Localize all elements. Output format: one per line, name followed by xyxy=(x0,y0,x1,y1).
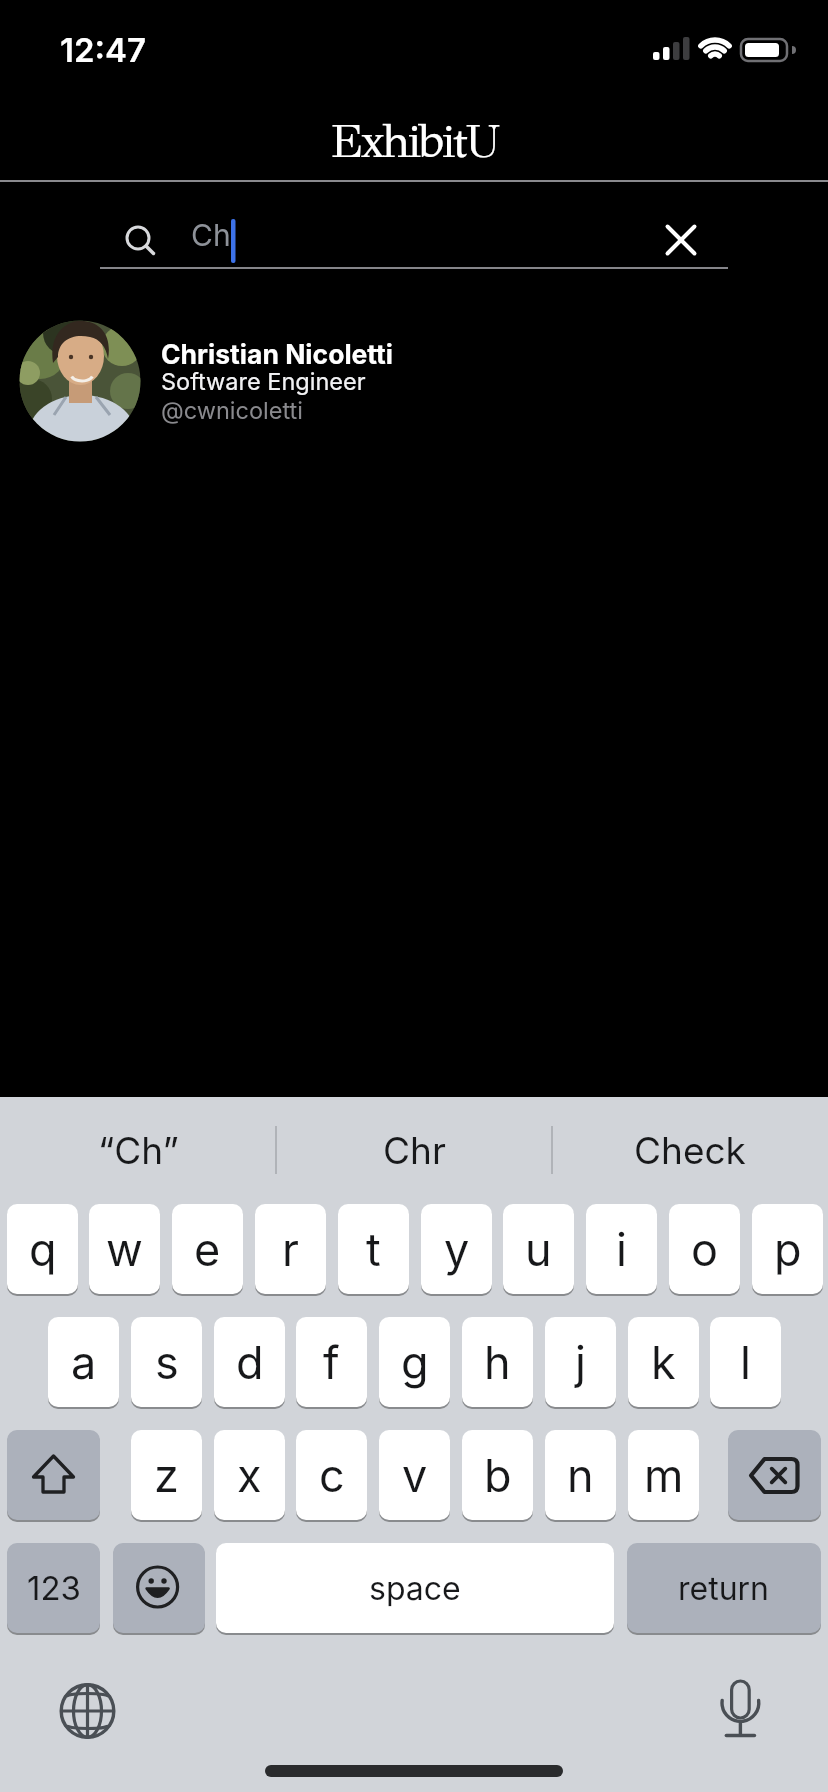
staticText: u xyxy=(525,1222,552,1276)
staticText: space xyxy=(369,1569,461,1608)
button[interactable] xyxy=(53,1677,121,1745)
staticText: ExhibitU xyxy=(0,112,828,170)
staticText: z xyxy=(154,1448,179,1502)
staticText: Chr xyxy=(383,1128,446,1173)
staticText: j xyxy=(575,1335,586,1389)
staticText: n xyxy=(567,1448,594,1502)
staticText: Software Engineer xyxy=(161,367,366,395)
staticText: y xyxy=(444,1222,470,1276)
staticText: @cwnicoletti xyxy=(161,396,303,424)
staticText: 12:47 xyxy=(60,30,147,70)
button[interactable]: x xyxy=(214,1430,285,1520)
button[interactable]: c xyxy=(296,1430,367,1520)
staticText: e xyxy=(194,1222,221,1276)
button[interactable]: Chr xyxy=(276,1097,552,1204)
staticText: return xyxy=(678,1569,770,1608)
button[interactable] xyxy=(706,1675,774,1743)
button[interactable] xyxy=(113,1543,205,1633)
staticText: m xyxy=(644,1448,684,1502)
staticText: Christian Nicoletti xyxy=(161,338,394,370)
button[interactable]: p xyxy=(752,1204,823,1294)
button[interactable] xyxy=(728,1430,821,1520)
button[interactable]: g xyxy=(379,1317,450,1407)
button[interactable]: o xyxy=(669,1204,740,1294)
button[interactable] xyxy=(7,1430,100,1520)
button[interactable]: v xyxy=(379,1430,450,1520)
button[interactable]: Christian Nicoletti xyxy=(0,312,828,452)
staticText: o xyxy=(691,1222,718,1276)
button[interactable]: m xyxy=(628,1430,699,1520)
button[interactable]: “Ch” xyxy=(0,1097,276,1204)
staticText: g xyxy=(401,1335,429,1389)
staticText: w xyxy=(106,1222,143,1276)
button[interactable]: a xyxy=(48,1317,119,1407)
button[interactable]: u xyxy=(503,1204,574,1294)
button[interactable]: Ch xyxy=(100,205,728,271)
button[interactable]: k xyxy=(628,1317,699,1407)
staticText: b xyxy=(484,1448,512,1502)
staticText: r xyxy=(282,1222,299,1276)
button[interactable]: e xyxy=(172,1204,243,1294)
staticText: d xyxy=(236,1335,264,1389)
button[interactable]: l xyxy=(710,1317,781,1407)
staticText: s xyxy=(155,1335,179,1389)
staticText: t xyxy=(366,1222,381,1276)
staticText: i xyxy=(616,1222,627,1276)
button[interactable]: j xyxy=(545,1317,616,1407)
staticText: Ch xyxy=(191,217,231,253)
staticText: q xyxy=(29,1222,57,1276)
button[interactable]: s xyxy=(131,1317,202,1407)
button[interactable]: 123 xyxy=(7,1543,100,1633)
staticText: “Ch” xyxy=(98,1128,179,1173)
button[interactable]: t xyxy=(338,1204,409,1294)
button[interactable] xyxy=(660,217,708,265)
staticText: c xyxy=(319,1448,345,1502)
staticText: k xyxy=(651,1335,676,1389)
button[interactable]: Check xyxy=(552,1097,828,1204)
button[interactable]: w xyxy=(89,1204,160,1294)
button[interactable]: h xyxy=(462,1317,533,1407)
button[interactable]: d xyxy=(214,1317,285,1407)
button[interactable]: space xyxy=(216,1543,614,1633)
staticText: l xyxy=(740,1335,751,1389)
button[interactable]: q xyxy=(7,1204,78,1294)
button[interactable]: y xyxy=(421,1204,492,1294)
staticText: a xyxy=(71,1335,97,1389)
button[interactable]: i xyxy=(586,1204,657,1294)
staticText: p xyxy=(774,1222,802,1276)
button[interactable]: b xyxy=(462,1430,533,1520)
button[interactable]: n xyxy=(545,1430,616,1520)
staticText: h xyxy=(484,1335,511,1389)
button[interactable]: r xyxy=(255,1204,326,1294)
button[interactable]: return xyxy=(627,1543,821,1633)
staticText: x xyxy=(237,1448,262,1502)
staticText: 123 xyxy=(27,1568,81,1608)
staticText: Check xyxy=(634,1128,746,1173)
button[interactable]: z xyxy=(131,1430,202,1520)
staticText: f xyxy=(323,1335,340,1389)
button[interactable]: f xyxy=(296,1317,367,1407)
staticText: v xyxy=(402,1448,428,1502)
